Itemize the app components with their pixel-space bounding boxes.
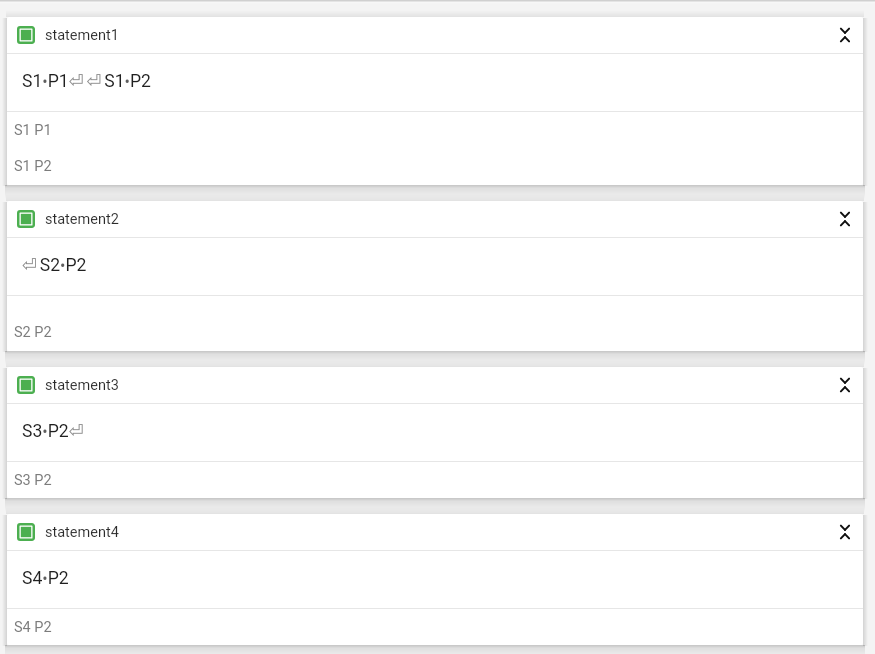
button[interactable]: Collapse	[830, 20, 860, 50]
button[interactable]: S3 P2	[14, 462, 863, 498]
staticText: S3 P2	[14, 472, 52, 489]
staticText: ⏎ S2•P2	[22, 255, 87, 276]
staticText: S1 P2	[14, 158, 52, 175]
staticText: statement2	[45, 211, 119, 228]
button[interactable]: statement2	[7, 201, 863, 237]
button[interactable]: Collapse	[830, 370, 860, 400]
button[interactable]: Collapse	[830, 204, 860, 234]
staticText: S1 P1	[14, 122, 52, 139]
button[interactable]: statement3	[7, 367, 863, 403]
button[interactable]: S4•P2	[7, 551, 863, 608]
staticText: statement4	[45, 524, 119, 541]
button[interactable]: S1 P1	[14, 112, 863, 148]
button[interactable]: statement4	[7, 514, 863, 550]
button[interactable]: S2 P2	[14, 314, 863, 351]
staticText: S3•P2⏎	[22, 421, 84, 442]
staticText: S4 P2	[14, 619, 52, 636]
button[interactable]: ⏎ S2•P2	[7, 238, 863, 295]
button[interactable]: statement1	[7, 17, 863, 53]
button[interactable]: S4 P2	[14, 609, 863, 645]
button[interactable]: S1•P1⏎ ⏎ S1•P2	[7, 54, 863, 111]
button[interactable]: S1 P2	[14, 148, 863, 185]
staticText: statement3	[45, 377, 119, 394]
staticText: S4•P2	[22, 568, 69, 589]
button[interactable]: S3•P2⏎	[7, 404, 863, 461]
button[interactable]: Collapse	[830, 517, 860, 547]
staticText: S1•P1⏎ ⏎ S1•P2	[22, 71, 151, 92]
staticText: S2 P2	[14, 324, 52, 341]
staticText: statement1	[45, 27, 119, 44]
